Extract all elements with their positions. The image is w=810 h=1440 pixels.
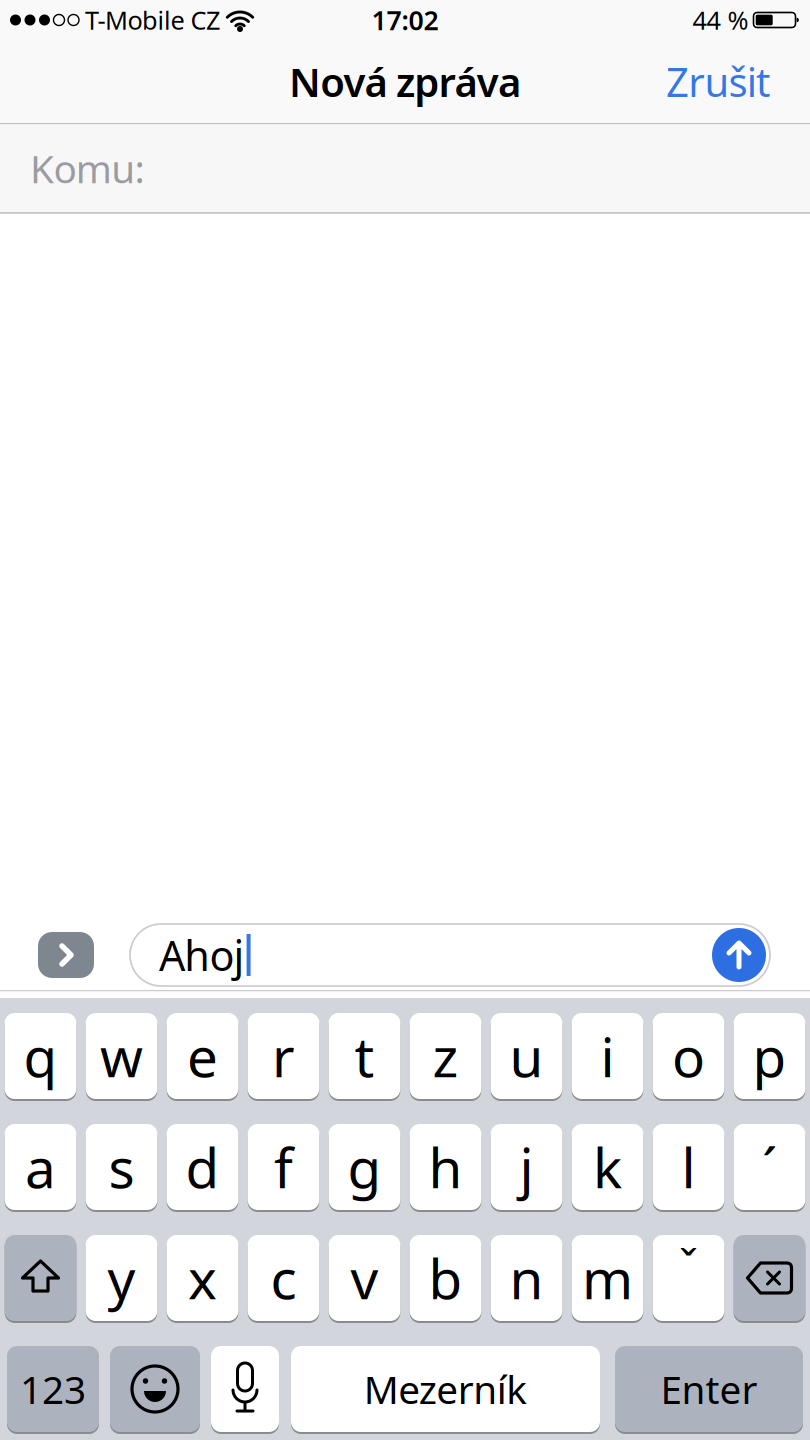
button[interactable]: h bbox=[410, 1123, 481, 1211]
staticText: t bbox=[354, 1020, 374, 1092]
button[interactable]: w bbox=[86, 1012, 157, 1100]
button[interactable]: Odeslat bbox=[712, 928, 766, 982]
staticText: l bbox=[681, 1131, 695, 1203]
button[interactable]: i bbox=[572, 1012, 643, 1100]
button[interactable]: ˇ bbox=[653, 1234, 724, 1322]
button[interactable]: Enter bbox=[615, 1345, 803, 1433]
button[interactable]: c bbox=[248, 1234, 319, 1322]
staticText: 123 bbox=[20, 1363, 86, 1415]
button[interactable]: Mezerník bbox=[291, 1345, 600, 1433]
button[interactable]: v bbox=[329, 1234, 400, 1322]
staticText: v bbox=[350, 1242, 378, 1314]
button[interactable]: Shift bbox=[5, 1234, 76, 1322]
staticText: q bbox=[23, 1020, 57, 1092]
button[interactable]: Zrušit bbox=[666, 55, 810, 108]
staticText: 17:02 bbox=[371, 2, 438, 38]
button[interactable]: y bbox=[86, 1234, 157, 1322]
button[interactable]: o bbox=[653, 1012, 724, 1100]
staticText: g bbox=[347, 1131, 381, 1203]
button[interactable]: u bbox=[491, 1012, 562, 1100]
staticText: Enter bbox=[660, 1363, 757, 1415]
staticText: Komu: bbox=[30, 143, 145, 194]
staticText: e bbox=[187, 1020, 218, 1092]
button[interactable]: z bbox=[410, 1012, 481, 1100]
staticText: r bbox=[272, 1020, 295, 1092]
button[interactable]: d bbox=[167, 1123, 238, 1211]
staticText: u bbox=[509, 1020, 543, 1092]
button[interactable]: f bbox=[248, 1123, 319, 1211]
staticText: x bbox=[188, 1242, 217, 1314]
button[interactable]: a bbox=[5, 1123, 76, 1211]
staticText: j bbox=[519, 1131, 533, 1203]
button[interactable]: b bbox=[410, 1234, 481, 1322]
staticText: p bbox=[752, 1020, 786, 1092]
staticText: s bbox=[108, 1131, 134, 1203]
button[interactable]: Rozšířit bbox=[38, 932, 94, 978]
staticText: c bbox=[270, 1242, 296, 1314]
staticText: Zrušit bbox=[666, 55, 770, 108]
button[interactable]: Smazat bbox=[734, 1234, 805, 1322]
staticText: b bbox=[428, 1242, 462, 1314]
button[interactable]: s bbox=[86, 1123, 157, 1211]
staticText: T-Mobile CZ bbox=[85, 3, 220, 37]
button[interactable]: l bbox=[653, 1123, 724, 1211]
button[interactable]: Emoji bbox=[110, 1345, 200, 1433]
staticText: n bbox=[509, 1242, 543, 1314]
button[interactable]: n bbox=[491, 1234, 562, 1322]
staticText: Mezerník bbox=[364, 1363, 527, 1415]
staticText: i bbox=[600, 1020, 614, 1092]
button[interactable]: t bbox=[329, 1012, 400, 1100]
button[interactable]: Diktování bbox=[211, 1345, 279, 1433]
button[interactable]: 123 bbox=[7, 1345, 99, 1433]
button[interactable]: p bbox=[734, 1012, 805, 1100]
button[interactable]: g bbox=[329, 1123, 400, 1211]
staticText: w bbox=[100, 1020, 143, 1092]
staticText: z bbox=[432, 1020, 458, 1092]
staticText: f bbox=[274, 1131, 293, 1203]
staticText: ´ bbox=[762, 1131, 777, 1203]
staticText: 44 % bbox=[692, 3, 748, 37]
staticText: a bbox=[25, 1131, 56, 1203]
button[interactable]: Komu bbox=[0, 124, 810, 212]
staticText: h bbox=[428, 1131, 462, 1203]
button[interactable]: e bbox=[167, 1012, 238, 1100]
staticText: o bbox=[672, 1020, 705, 1092]
staticText: Ahoj bbox=[159, 928, 245, 982]
button[interactable]: j bbox=[491, 1123, 562, 1211]
button[interactable]: r bbox=[248, 1012, 319, 1100]
staticText: Nová zpráva bbox=[289, 55, 521, 108]
button[interactable]: x bbox=[167, 1234, 238, 1322]
staticText: k bbox=[593, 1131, 622, 1203]
staticText: ˇ bbox=[679, 1236, 698, 1296]
staticText: y bbox=[107, 1242, 135, 1314]
button[interactable]: k bbox=[572, 1123, 643, 1211]
staticText: d bbox=[185, 1131, 219, 1203]
button[interactable]: ´ bbox=[734, 1123, 805, 1211]
button[interactable]: q bbox=[5, 1012, 76, 1100]
button[interactable]: m bbox=[572, 1234, 643, 1322]
staticText: m bbox=[582, 1242, 633, 1314]
